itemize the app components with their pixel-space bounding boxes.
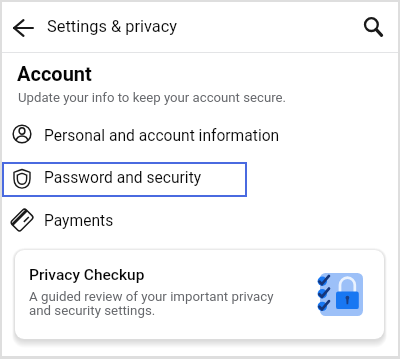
staticText: Payments: [44, 212, 114, 230]
staticText: Privacy Checkup: [29, 266, 145, 284]
staticText: Password and security: [44, 169, 202, 187]
staticText: A guided review of your important privac…: [29, 289, 274, 319]
button[interactable]: Personal and account information: [2, 116, 398, 151]
button[interactable]: Back: [8, 12, 39, 43]
staticText: Account: [17, 62, 92, 85]
button[interactable]: Password and security: [2, 162, 247, 197]
staticText: Update your info to keep your account se…: [18, 90, 286, 105]
staticText: Personal and account information: [44, 127, 280, 145]
staticText: Settings & privacy: [47, 17, 177, 36]
button[interactable]: Payments: [2, 202, 398, 237]
button[interactable]: Privacy Checkup: [15, 250, 384, 339]
button[interactable]: Search: [358, 12, 388, 42]
